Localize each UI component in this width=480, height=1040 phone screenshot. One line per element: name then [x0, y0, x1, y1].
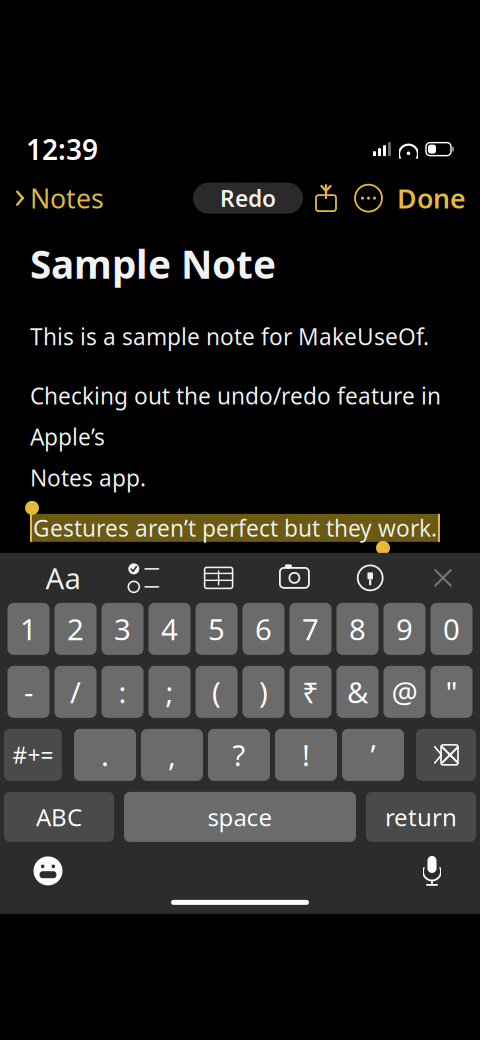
- button[interactable]: Checklist: [127, 556, 161, 600]
- button[interactable]: space: [124, 792, 356, 842]
- button[interactable]: 2: [54, 603, 96, 655]
- button[interactable]: .: [74, 729, 136, 781]
- button[interactable]: -: [7, 666, 49, 718]
- staticText: Done: [397, 180, 466, 216]
- button[interactable]: Emoji: [28, 851, 68, 891]
- staticText: Aa: [45, 558, 80, 597]
- button[interactable]: Dictate: [412, 851, 452, 891]
- button[interactable]: 3: [101, 603, 143, 655]
- staticText: ABC: [36, 801, 82, 833]
- button[interactable]: 5: [195, 603, 237, 655]
- staticText: ": [445, 672, 457, 711]
- staticText: 6: [255, 609, 272, 648]
- staticText: 4: [161, 609, 178, 648]
- button[interactable]: ,: [141, 729, 203, 781]
- staticText: Notes: [30, 180, 104, 216]
- staticText: /: [70, 672, 81, 711]
- staticText: 9: [396, 609, 413, 648]
- staticText: 8: [349, 609, 366, 648]
- button[interactable]: Redo: [193, 183, 303, 214]
- button[interactable]: Notes: [0, 172, 104, 224]
- button[interactable]: Markup: [353, 556, 387, 600]
- staticText: :: [118, 672, 126, 711]
- staticText: 7: [302, 609, 319, 648]
- staticText: This is a sample note for MakeUseOf.: [30, 321, 429, 352]
- button[interactable]: 1: [7, 603, 49, 655]
- staticText: return: [385, 801, 457, 833]
- staticText: 12:39: [26, 130, 98, 168]
- staticText: .: [101, 735, 109, 774]
- button[interactable]: ?: [208, 729, 270, 781]
- staticText: space: [207, 801, 272, 833]
- button[interactable]: :: [101, 666, 143, 718]
- staticText: ): [259, 672, 268, 711]
- staticText: 5: [208, 609, 225, 648]
- staticText: Redo: [220, 183, 276, 213]
- staticText: 0: [443, 609, 460, 648]
- button[interactable]: &: [336, 666, 378, 718]
- button[interactable]: 6: [242, 603, 284, 655]
- staticText: 3: [114, 609, 131, 648]
- button[interactable]: Table: [202, 556, 236, 600]
- staticText: Sample Note: [30, 238, 276, 289]
- button[interactable]: ABC: [4, 792, 114, 842]
- button[interactable]: !: [275, 729, 337, 781]
- staticText: 2: [67, 609, 84, 648]
- button[interactable]: ’: [342, 729, 404, 781]
- staticText: #+=: [12, 740, 53, 770]
- staticText: Gestures aren’t perfect but they work.: [33, 513, 437, 543]
- staticText: ;: [165, 672, 173, 711]
- staticText: ₹: [302, 672, 319, 711]
- button[interactable]: More: [346, 179, 391, 218]
- button[interactable]: Done: [391, 172, 480, 224]
- staticText: Checking out the undo/redo feature in Ap…: [30, 381, 441, 493]
- staticText: 1: [20, 609, 37, 648]
- button[interactable]: ): [242, 666, 284, 718]
- button[interactable]: #+=: [4, 729, 62, 781]
- button[interactable]: 7: [289, 603, 331, 655]
- button[interactable]: Hide keyboard: [428, 556, 458, 600]
- button[interactable]: return: [366, 792, 476, 842]
- button[interactable]: @: [383, 666, 425, 718]
- button[interactable]: 8: [336, 603, 378, 655]
- button[interactable]: Format: [40, 556, 86, 600]
- button[interactable]: /: [54, 666, 96, 718]
- button[interactable]: Delete: [416, 729, 476, 781]
- button[interactable]: ": [430, 666, 472, 718]
- staticText: !: [302, 735, 310, 774]
- staticText: @: [391, 672, 417, 711]
- button[interactable]: (: [195, 666, 237, 718]
- button[interactable]: Share: [306, 178, 346, 218]
- button[interactable]: ;: [148, 666, 190, 718]
- staticText: -: [24, 672, 33, 711]
- button[interactable]: 9: [383, 603, 425, 655]
- staticText: &: [347, 672, 368, 711]
- staticText: ,: [168, 735, 176, 774]
- button[interactable]: 0: [430, 603, 472, 655]
- button[interactable]: Camera: [276, 556, 312, 600]
- staticText: (: [212, 672, 221, 711]
- button[interactable]: 4: [148, 603, 190, 655]
- staticText: ?: [232, 735, 245, 774]
- button[interactable]: ₹: [289, 666, 331, 718]
- staticText: ’: [370, 735, 375, 774]
